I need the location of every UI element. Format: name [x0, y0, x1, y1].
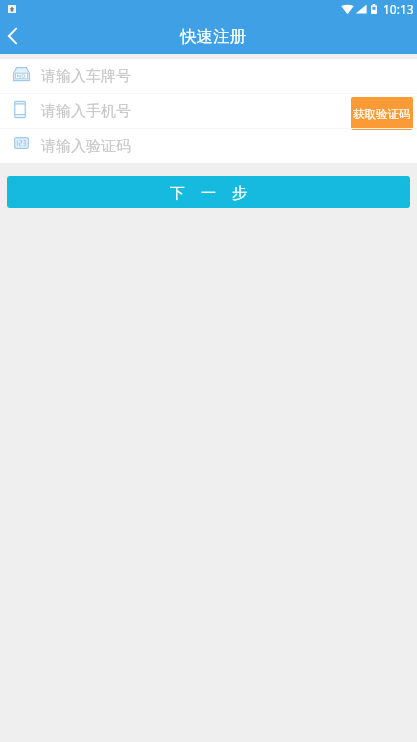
- button[interactable]: 请输入手机号: [13, 94, 417, 128]
- staticText: 10:13: [383, 1, 414, 17]
- staticText: 快速注册: [180, 26, 246, 47]
- button[interactable]: Back: [0, 19, 26, 53]
- staticText: 请输入手机号: [41, 102, 131, 121]
- staticText: 请输入车牌号: [41, 67, 131, 86]
- button[interactable]: 请输入验证码: [13, 129, 417, 163]
- staticText: 下 一 步: [170, 182, 253, 202]
- staticText: 获取验证码: [353, 107, 411, 121]
- button[interactable]: 获取验证码: [351, 97, 413, 130]
- button[interactable]: 下 一 步: [7, 176, 410, 208]
- button[interactable]: 请输入车牌号: [13, 59, 417, 93]
- staticText: 请输入验证码: [41, 137, 131, 156]
